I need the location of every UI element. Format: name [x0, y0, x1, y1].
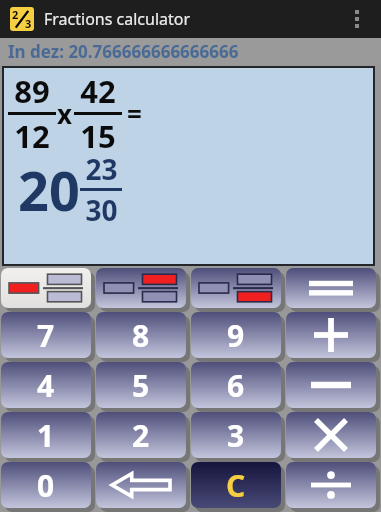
- staticText: 1: [37, 415, 55, 456]
- button[interactable]: 0: [1, 462, 95, 512]
- staticText: C: [226, 465, 246, 506]
- staticText: 2: [12, 7, 19, 22]
- staticText: 9: [227, 315, 245, 356]
- staticText: 6: [227, 365, 245, 406]
- button[interactable]: Backspace: [96, 462, 190, 512]
- staticText: 15: [80, 115, 116, 157]
- staticText: 4: [37, 365, 55, 406]
- staticText: 42: [80, 70, 116, 112]
- button[interactable]: 9: [191, 312, 285, 362]
- button[interactable]: Minus: [286, 362, 380, 412]
- button[interactable]: C: [191, 462, 285, 512]
- staticText: 3: [25, 16, 32, 31]
- button[interactable]: Multiply: [286, 412, 380, 462]
- staticText: 8: [132, 315, 150, 356]
- staticText: 20: [18, 153, 80, 227]
- button[interactable]: Whole number field: [1, 268, 95, 312]
- staticText: 89: [14, 70, 50, 112]
- staticText: 2: [132, 415, 150, 456]
- button[interactable]: 89: [4, 68, 373, 264]
- staticText: 5: [132, 365, 150, 406]
- button[interactable]: Equals: [286, 268, 380, 312]
- staticText: In dez: 20.766666666666666: [8, 40, 239, 63]
- button[interactable]: 4: [1, 362, 95, 412]
- button[interactable]: 3: [191, 412, 285, 462]
- staticText: 12: [14, 115, 50, 157]
- button[interactable]: 2: [96, 412, 190, 462]
- button[interactable]: Denominator field: [191, 268, 285, 312]
- button[interactable]: More options: [343, 0, 371, 38]
- button[interactable]: Plus: [286, 312, 380, 362]
- staticText: 3: [227, 415, 245, 456]
- staticText: =: [127, 96, 142, 131]
- staticText: 30: [85, 191, 118, 229]
- button[interactable]: Divide: [286, 462, 380, 512]
- staticText: x: [57, 96, 73, 131]
- button[interactable]: Numerator field: [96, 268, 190, 312]
- staticText: 0: [37, 465, 55, 506]
- staticText: Fractions calculator: [44, 8, 191, 30]
- button[interactable]: 6: [191, 362, 285, 412]
- button[interactable]: 7: [1, 312, 95, 362]
- staticText: 7: [37, 315, 55, 356]
- button[interactable]: 1: [1, 412, 95, 462]
- staticText: 23: [85, 150, 118, 188]
- button[interactable]: 5: [96, 362, 190, 412]
- button[interactable]: 8: [96, 312, 190, 362]
